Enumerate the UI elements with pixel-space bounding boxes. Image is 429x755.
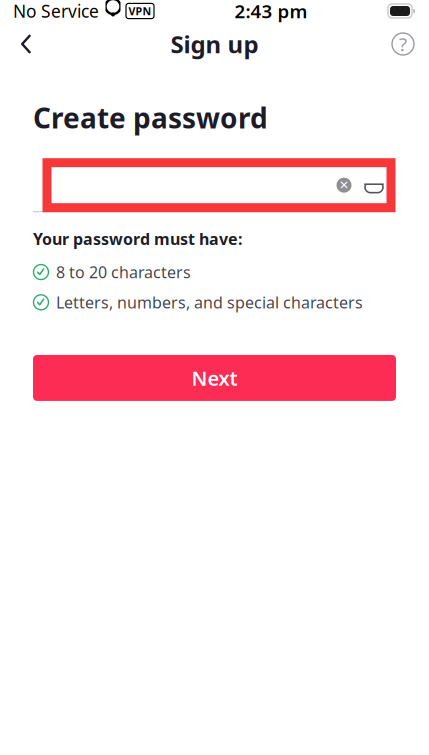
button[interactable]: Back (4, 24, 48, 64)
button[interactable]: Clear text (329, 170, 359, 200)
staticText: Next (191, 365, 237, 391)
staticText: ? (399, 32, 407, 56)
staticText: ✕ (339, 178, 349, 192)
button[interactable]: Show password (359, 170, 389, 200)
staticText: VPN (128, 4, 151, 18)
staticText: 2:43 pm (234, 0, 307, 23)
staticText: No Service (13, 0, 99, 22)
staticText: Sign up (170, 28, 258, 60)
staticText: 8 to 20 characters (56, 261, 191, 283)
staticText: Your password must have: (33, 228, 242, 249)
button[interactable]: Next (33, 355, 396, 401)
button[interactable]: Help (381, 24, 425, 64)
staticText: Letters, numbers, and special characters (56, 292, 363, 313)
staticText: Create password (33, 99, 268, 136)
